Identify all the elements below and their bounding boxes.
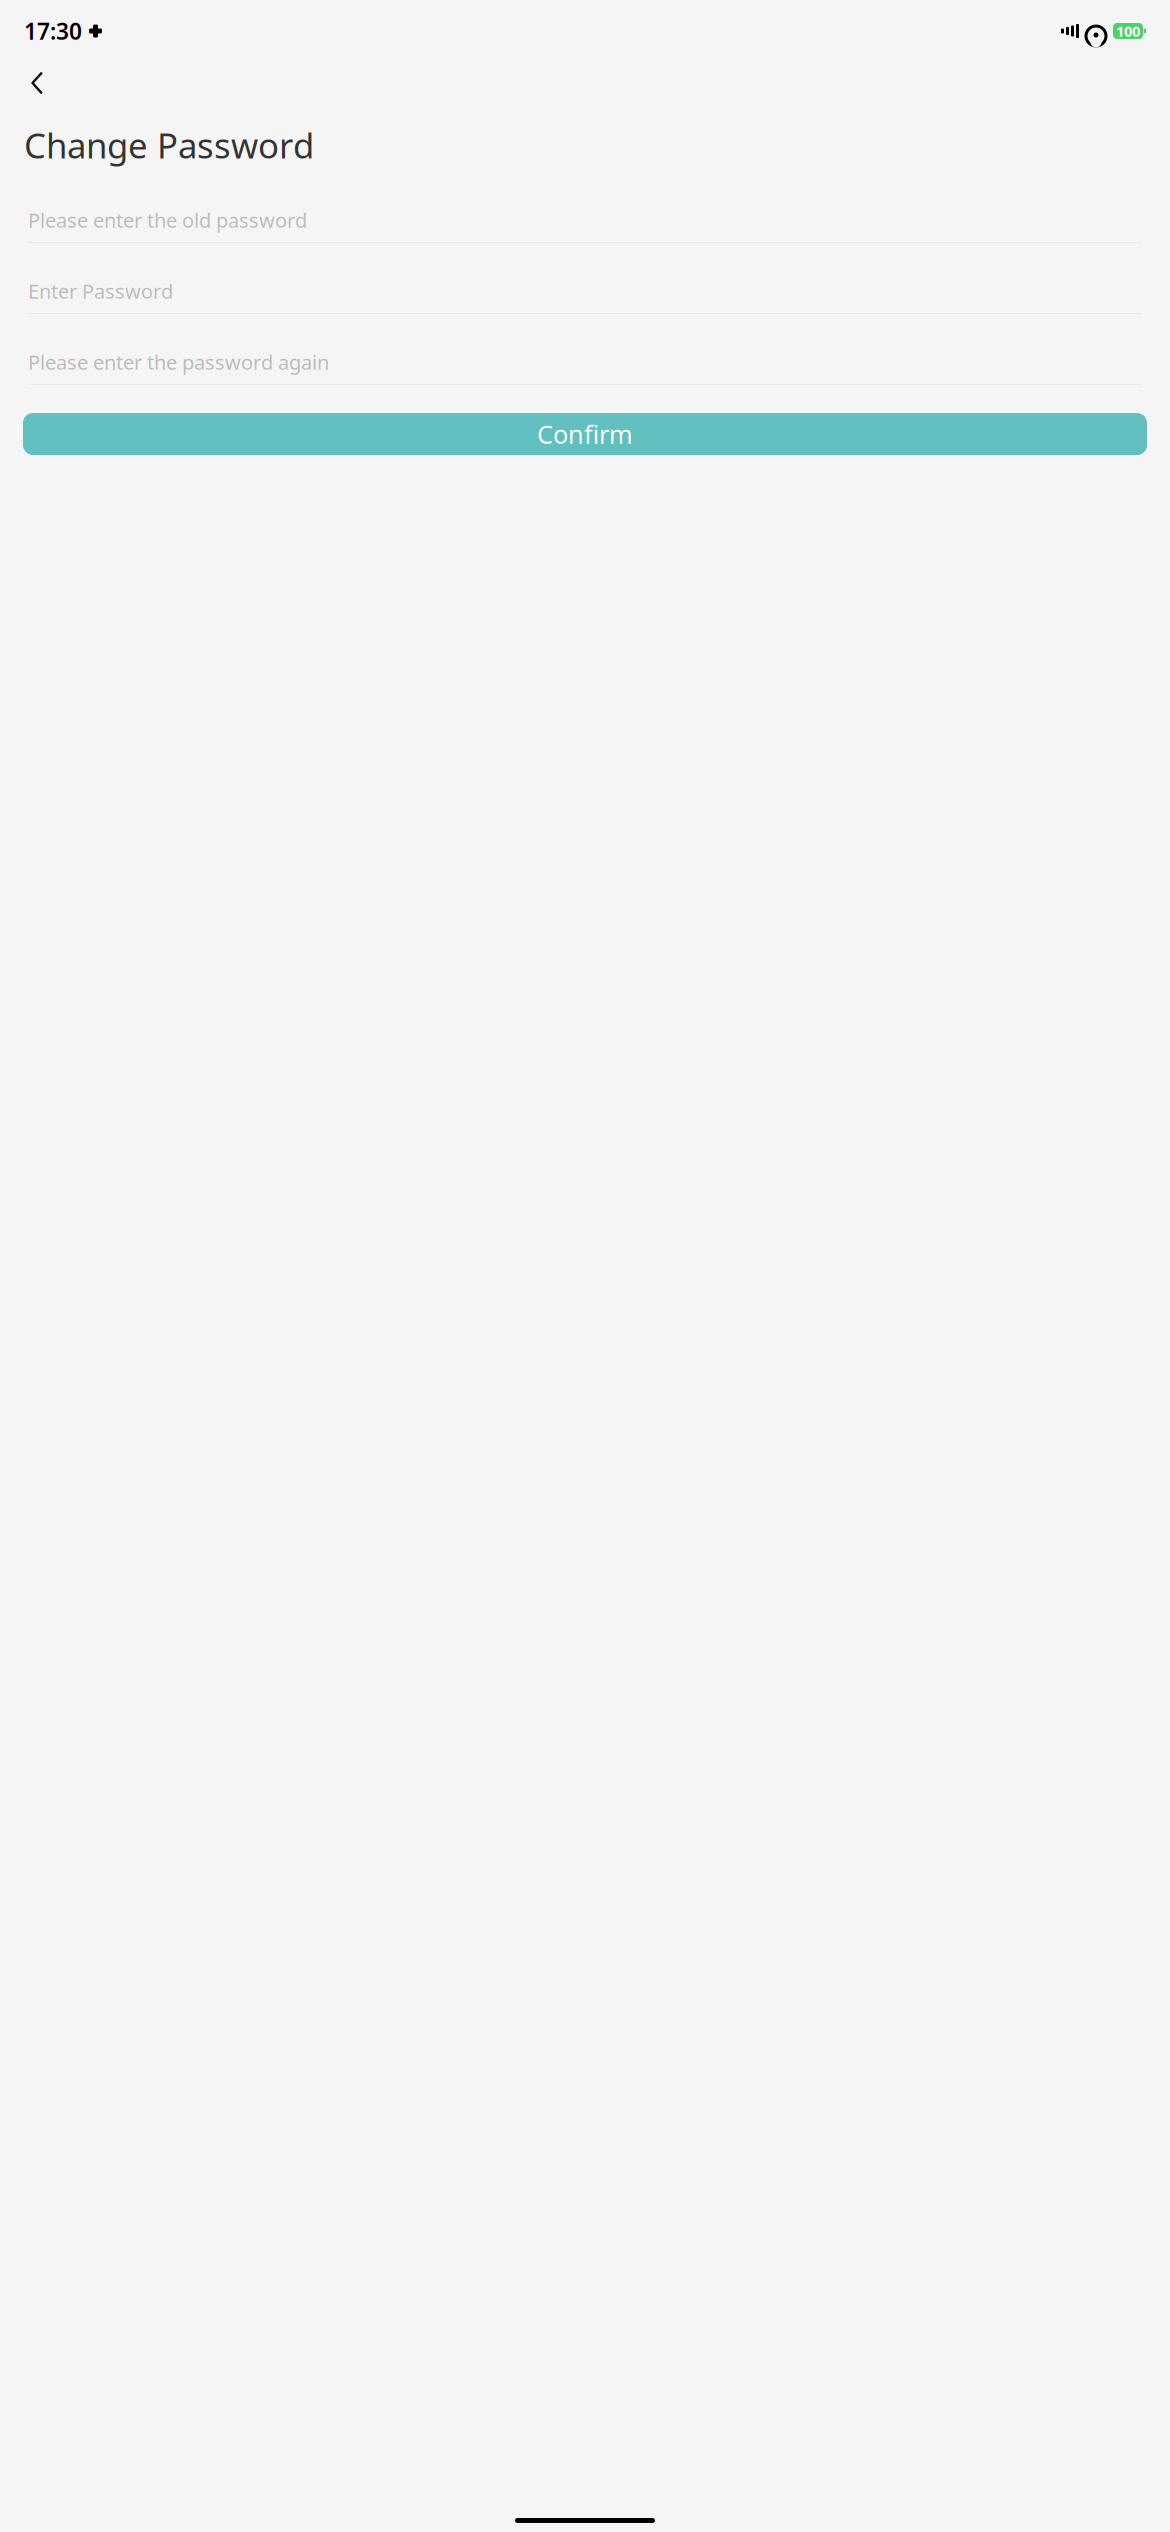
- staticText: Please enter the old password: [28, 207, 307, 233]
- staticText: Enter Password: [28, 278, 173, 304]
- staticText: Confirm: [537, 417, 633, 451]
- button[interactable]: Confirm: [0, 413, 1170, 455]
- button[interactable]: Please enter the old password: [0, 198, 1170, 243]
- staticText: Change Password: [24, 122, 314, 168]
- button[interactable]: Enter Password: [0, 269, 1170, 314]
- button[interactable]: Please enter the password again: [0, 340, 1170, 385]
- staticText: 100: [1116, 21, 1140, 41]
- staticText: 17:30: [24, 16, 82, 46]
- button[interactable]: Back: [15, 61, 59, 105]
- staticText: Please enter the password again: [28, 349, 329, 375]
